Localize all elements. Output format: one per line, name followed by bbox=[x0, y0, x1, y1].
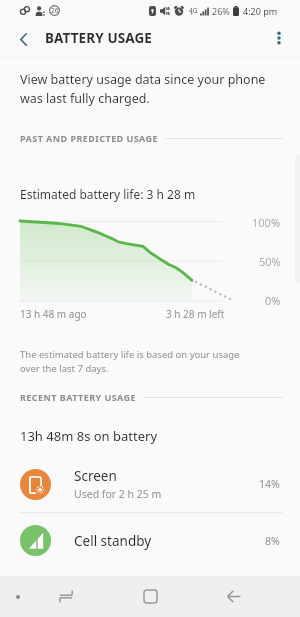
button[interactable]: Screen bbox=[0, 456, 300, 512]
staticText: 26 bbox=[51, 6, 59, 15]
staticText: View battery usage data since your phone… bbox=[20, 71, 268, 106]
staticText: 14% bbox=[259, 477, 280, 491]
staticText: + bbox=[190, 10, 194, 18]
button[interactable]: Notification indicator bbox=[6, 585, 30, 609]
button[interactable]: Recent apps bbox=[24, 576, 108, 617]
staticText: PAST AND PREDICTED USAGE bbox=[20, 132, 159, 144]
staticText: 100% bbox=[252, 215, 281, 230]
button[interactable]: Back bbox=[192, 576, 276, 617]
button[interactable]: More options bbox=[258, 17, 300, 59]
staticText: 3 h 28 m left bbox=[166, 307, 225, 321]
staticText: Screen bbox=[74, 467, 117, 485]
staticText: 4:20 pm bbox=[243, 5, 278, 17]
staticText: 26% bbox=[212, 5, 230, 17]
staticText: 13 h 48 m ago bbox=[20, 307, 87, 321]
staticText: Estimated battery life: 3 h 28 m bbox=[20, 186, 196, 202]
staticText: Used for 2 h 25 m bbox=[74, 487, 162, 501]
staticText: The estimated battery life is based on y… bbox=[20, 348, 248, 375]
staticText: 8% bbox=[265, 534, 280, 548]
button[interactable]: Cell standby bbox=[0, 513, 300, 568]
staticText: BATTERY USAGE bbox=[45, 29, 152, 47]
staticText: Cell standby bbox=[74, 532, 152, 550]
staticText: RECENT BATTERY USAGE bbox=[20, 391, 137, 403]
staticText: 50% bbox=[259, 254, 281, 269]
button[interactable]: Home bbox=[108, 576, 192, 617]
button[interactable]: Navigate up bbox=[0, 17, 42, 59]
staticText: 0% bbox=[265, 293, 281, 308]
staticText: 4G bbox=[189, 6, 198, 15]
staticText: 13h 48m 8s on battery bbox=[20, 427, 158, 445]
